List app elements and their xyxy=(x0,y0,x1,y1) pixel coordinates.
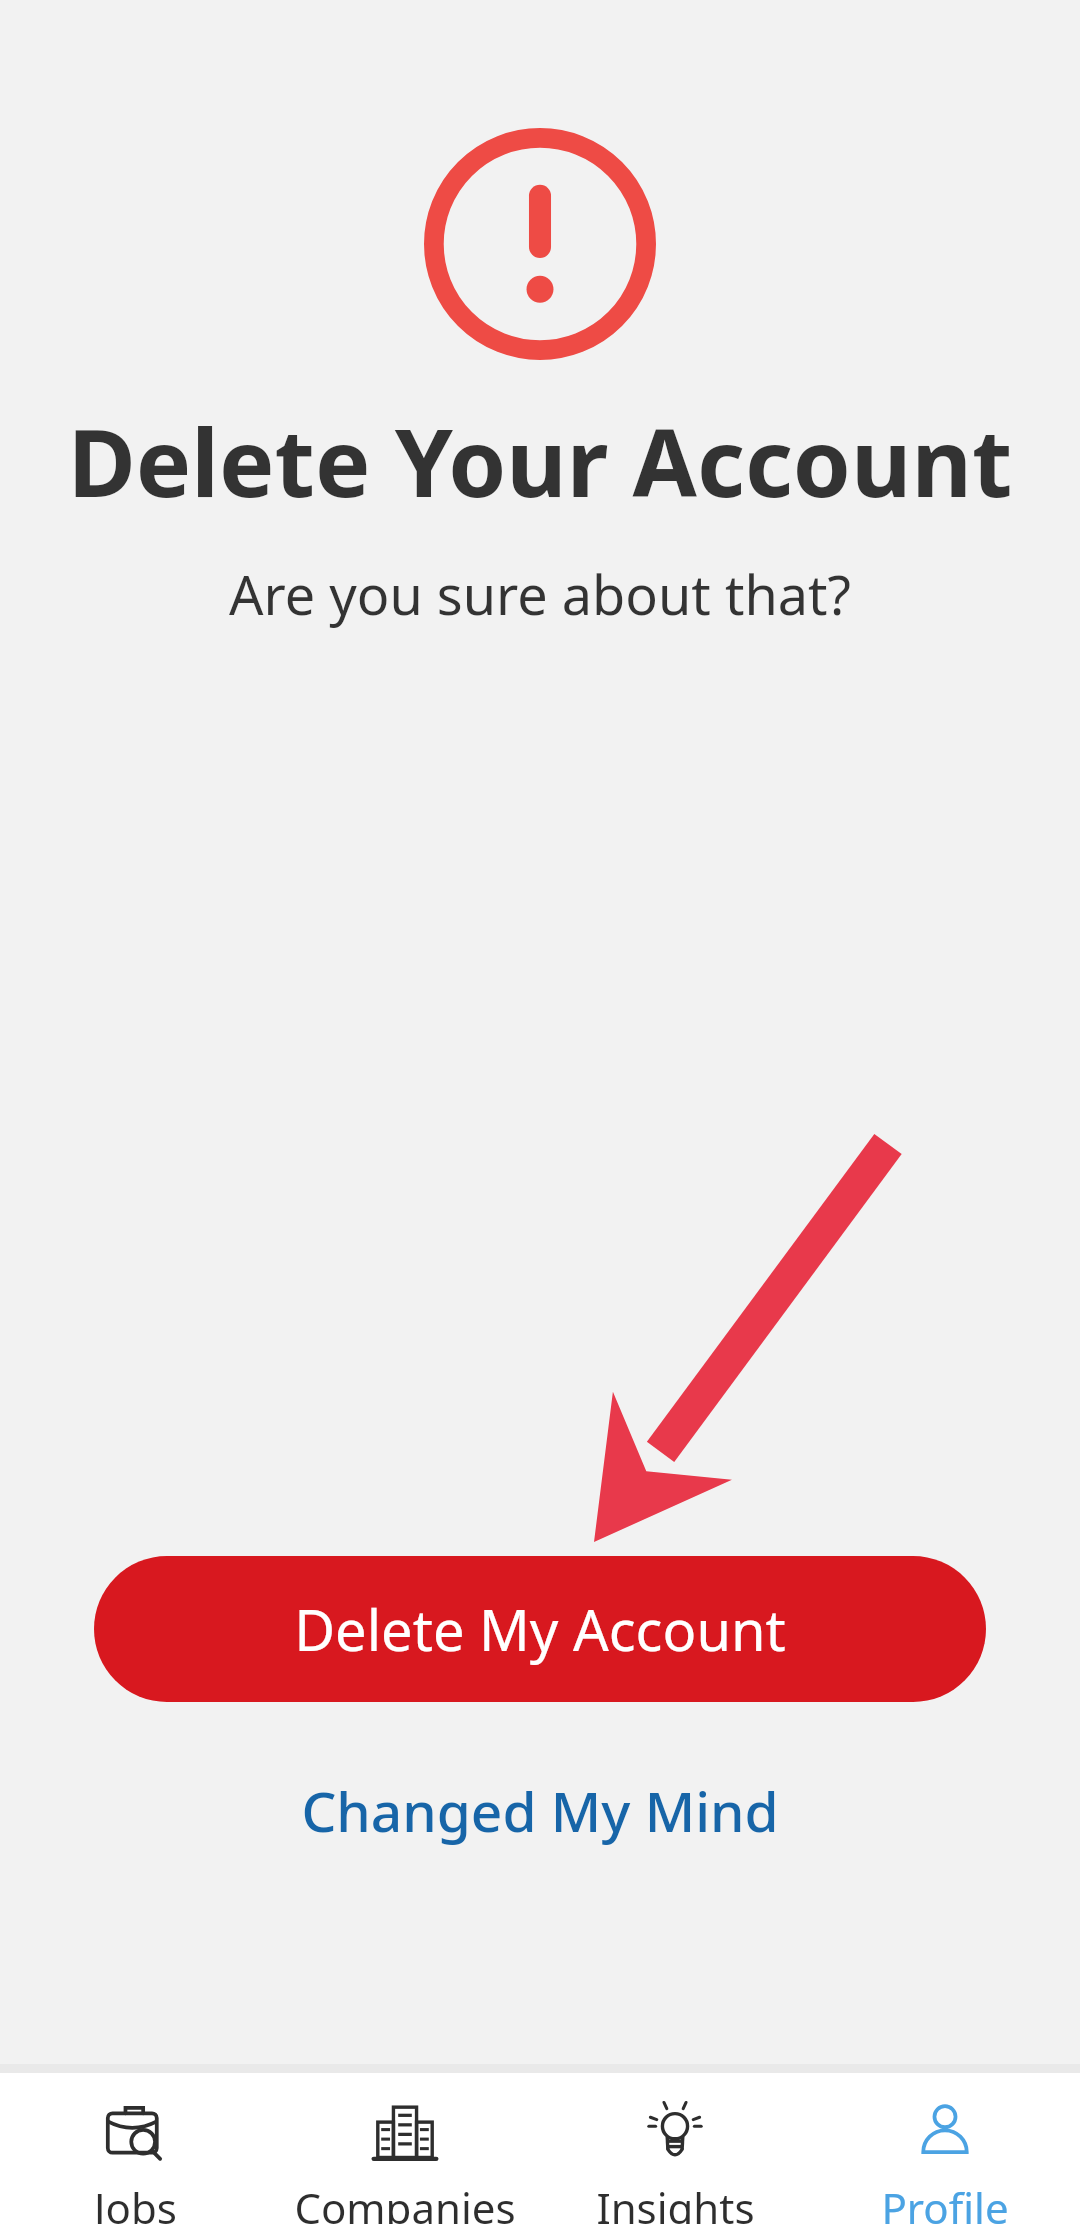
staticText: Changed My Mind xyxy=(301,1773,779,1848)
button[interactable]: Companies xyxy=(270,2073,540,2224)
other: Warning xyxy=(424,128,656,360)
button[interactable]: Delete My Account xyxy=(94,1556,986,1702)
button[interactable]: Profile xyxy=(810,2073,1080,2224)
button[interactable]: Insights xyxy=(540,2073,810,2224)
staticText: Are you sure about that? xyxy=(0,557,1080,631)
staticText: Delete Your Account xyxy=(0,398,1080,525)
staticText: Profile xyxy=(881,2179,1009,2224)
staticText: Insights xyxy=(596,2179,755,2224)
button[interactable]: Jobs xyxy=(0,2073,270,2224)
staticText: Delete My Account xyxy=(294,1591,786,1667)
button[interactable]: Changed My Mind xyxy=(290,1760,790,1860)
staticText: Companies xyxy=(294,2179,516,2224)
staticText: Jobs xyxy=(94,2179,177,2224)
